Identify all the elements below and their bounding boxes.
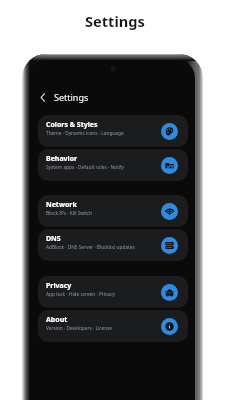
staticText: Block IPs · Kill Switch — [46, 210, 93, 217]
staticText: AdBlock · DNS Server · Blocklist updates — [46, 244, 135, 251]
staticText: Theme · Dynamic icons · Language — [46, 130, 124, 137]
staticText: Version · Developers · License — [46, 325, 113, 332]
button[interactable]: About — [38, 310, 188, 342]
button[interactable]: Back — [37, 91, 49, 103]
button[interactable]: Privacy — [38, 276, 188, 308]
staticText: Settings — [85, 11, 145, 31]
staticText: System apps · Default rules · Notify — [46, 164, 125, 171]
button[interactable]: Behavior — [38, 149, 188, 181]
staticText: Colors & Styles — [46, 120, 98, 130]
staticText: DNS — [46, 234, 61, 244]
staticText: App lock · Hide screen · Privacy — [46, 291, 115, 298]
button[interactable]: Colors & Styles — [38, 115, 188, 147]
staticText: Behavior — [46, 154, 78, 164]
staticText: Privacy — [46, 281, 72, 291]
button[interactable]: DNS — [38, 229, 188, 261]
staticText: Network — [46, 200, 77, 210]
button[interactable]: Network — [38, 195, 188, 227]
staticText: About — [46, 315, 68, 325]
staticText: Settings — [54, 91, 89, 103]
